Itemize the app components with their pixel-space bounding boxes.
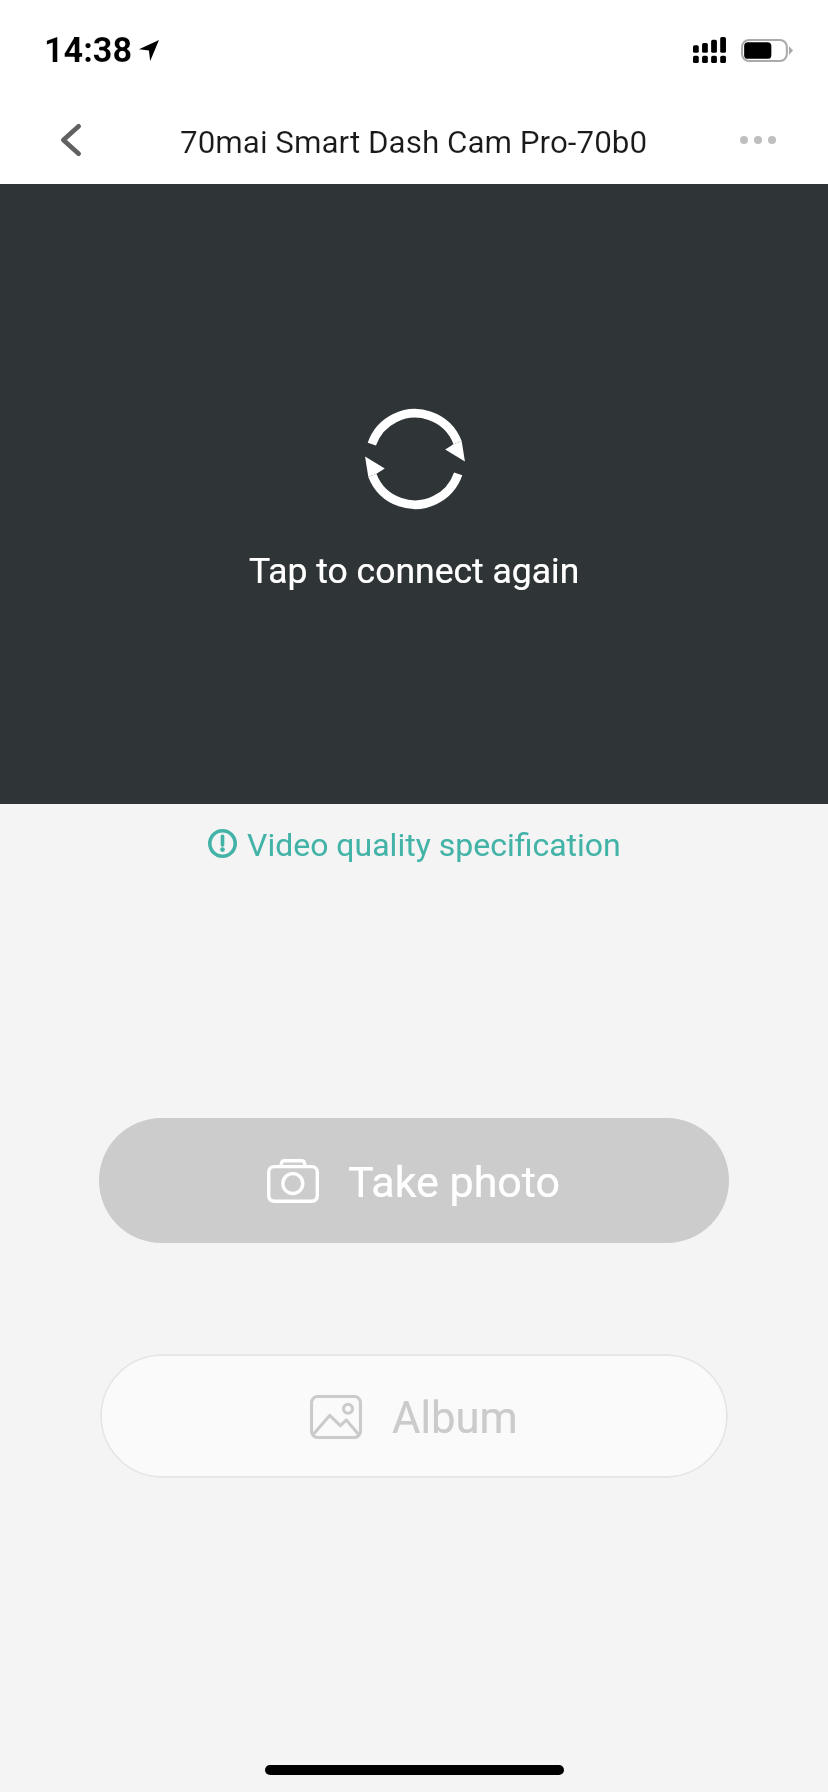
button[interactable]: Take photo — [99, 1118, 729, 1243]
button[interactable]: More options — [740, 100, 776, 184]
staticText: Album — [392, 1393, 518, 1444]
button[interactable]: Video quality specification — [0, 826, 828, 864]
button[interactable]: Tap to connect again — [0, 184, 828, 804]
staticText: 14:38 — [44, 30, 133, 70]
button[interactable]: Back — [29, 100, 113, 184]
button[interactable]: Album — [100, 1354, 728, 1478]
staticText: Tap to connect again — [249, 550, 580, 592]
staticText: Take photo — [348, 1157, 561, 1207]
staticText: Video quality specification — [247, 826, 621, 864]
staticText: 70mai Smart Dash Cam Pro-70b0 — [180, 124, 648, 161]
